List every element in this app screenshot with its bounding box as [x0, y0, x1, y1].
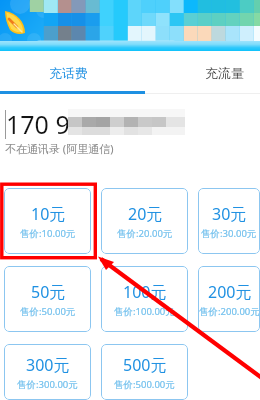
staticText: 充话费 [49, 65, 88, 81]
button[interactable]: 10元 [4, 188, 91, 254]
staticText: 售价:300.00元 [17, 378, 78, 391]
button[interactable]: 100元 [101, 266, 188, 332]
staticText: 售价:20.00元 [117, 227, 173, 240]
staticText: 售价:10.00元 [20, 227, 76, 240]
staticText: 售价:100.00元 [114, 305, 175, 318]
button[interactable]: 50元 [4, 266, 91, 332]
staticText: 售价:30.00元 [201, 227, 257, 240]
staticText: 售价:50.00元 [20, 305, 76, 318]
button[interactable]: 充话费 [0, 51, 136, 94]
staticText: 100元 [123, 281, 167, 303]
button[interactable]: 300元 [4, 344, 91, 400]
button[interactable]: 200元 [198, 266, 260, 332]
staticText: 售价:500.00元 [114, 378, 175, 391]
staticText: 300元 [26, 354, 70, 376]
button[interactable]: 500元 [101, 344, 188, 400]
staticText: 30元 [212, 203, 247, 225]
staticText: 售价:200.00元 [199, 305, 260, 318]
staticText: 充流量 [205, 65, 244, 81]
staticText: 200元 [208, 281, 252, 303]
button[interactable]: 充流量 [156, 51, 260, 94]
staticText: 170 9 [6, 107, 70, 141]
button[interactable]: Promotion banner [0, 0, 260, 51]
staticText: 10元 [31, 203, 66, 225]
staticText: 50元 [31, 281, 66, 303]
staticText: 500元 [123, 354, 167, 376]
button[interactable]: 30元 [198, 188, 260, 254]
staticText: 不在通讯录 (阿里通信) [5, 141, 114, 156]
staticText: 20元 [128, 203, 163, 225]
button[interactable]: 20元 [101, 188, 188, 254]
